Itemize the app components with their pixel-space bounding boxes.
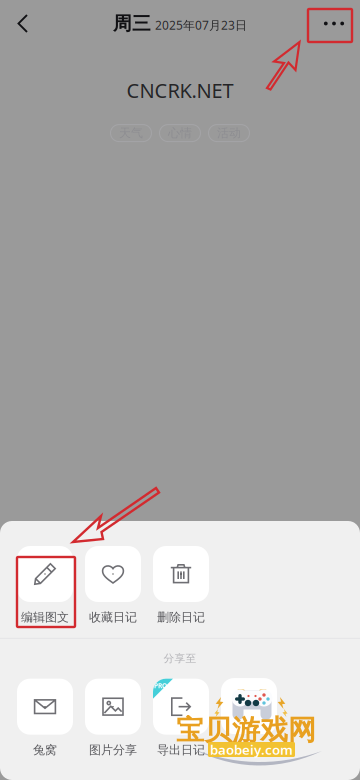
button[interactable]: 编辑图文	[17, 546, 73, 625]
staticText: 图片分享	[89, 743, 137, 757]
button[interactable]: 心情	[159, 125, 200, 142]
staticText: 导出日记	[157, 743, 205, 757]
button[interactable]: PRO	[153, 679, 209, 757]
staticText: PRO	[154, 681, 167, 690]
staticText: baobeiy.com	[210, 741, 293, 758]
button[interactable]: Back	[0, 0, 46, 47]
staticText: 收藏日记	[89, 610, 137, 625]
staticText: 编辑图文	[21, 610, 69, 625]
staticText: 周三	[113, 12, 151, 35]
staticText: 心情	[168, 126, 192, 140]
button[interactable]: 图片分享	[85, 679, 141, 757]
staticText: 删除日记	[157, 610, 205, 625]
staticText: 兔窝	[33, 743, 57, 757]
staticText: 活动	[217, 126, 241, 140]
button[interactable]: 天气	[110, 125, 151, 142]
staticText: 天气	[119, 126, 143, 140]
button[interactable]: 收藏日记	[85, 546, 141, 625]
staticText: 分享至	[163, 652, 196, 665]
button[interactable]: 删除日记	[153, 546, 209, 625]
button[interactable]: 兔窝	[17, 679, 73, 757]
staticText: 2025年07月23日	[155, 17, 247, 33]
button[interactable]: 活动	[208, 125, 249, 142]
staticText: 宝贝游戏网	[176, 713, 316, 747]
staticText: CNCRK.NET	[126, 77, 233, 104]
button[interactable]	[221, 678, 277, 758]
button[interactable]: More options	[308, 0, 360, 47]
